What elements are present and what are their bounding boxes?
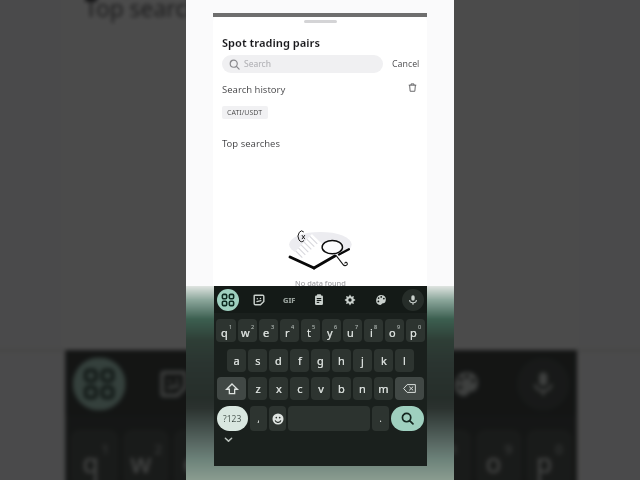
- button[interactable]: q: [216, 319, 236, 342]
- staticText: No data found: [260, 331, 382, 350]
- button[interactable]: v: [311, 377, 330, 400]
- staticText: d: [275, 353, 282, 368]
- button[interactable]: ?123: [217, 406, 248, 431]
- button[interactable]: GIF: [222, 360, 270, 408]
- button[interactable]: Voice input: [517, 358, 570, 410]
- button[interactable]: r: [280, 319, 299, 342]
- staticText: b: [338, 381, 345, 396]
- staticText: r: [236, 444, 248, 480]
- button[interactable]: x: [269, 377, 288, 400]
- button[interactable]: Emoji: [269, 406, 286, 431]
- staticText: n: [359, 381, 366, 396]
- button[interactable]: i: [364, 319, 383, 342]
- button[interactable]: n: [353, 377, 372, 400]
- staticText: 1: [229, 323, 233, 330]
- button[interactable]: g: [311, 349, 330, 372]
- button[interactable]: Cancel: [388, 55, 424, 73]
- staticText: 0: [418, 323, 422, 330]
- staticText: a: [233, 353, 240, 368]
- button[interactable]: w: [123, 430, 169, 480]
- staticText: CATI/USDT: [227, 108, 263, 118]
- button[interactable]: ,: [250, 406, 267, 431]
- button[interactable]: Keyboard toolbar: [217, 289, 239, 311]
- button[interactable]: j: [353, 349, 372, 372]
- button[interactable]: u: [343, 319, 362, 342]
- button[interactable]: Keyboard toolbar: [73, 358, 126, 410]
- button[interactable]: o: [385, 319, 404, 342]
- staticText: No data found: [295, 278, 346, 286]
- button[interactable]: o: [476, 430, 522, 480]
- staticText: GIF: [231, 372, 262, 396]
- button[interactable]: z: [248, 377, 267, 400]
- button[interactable]: GIF: [279, 290, 299, 310]
- staticText: l: [403, 353, 406, 368]
- staticText: .: [379, 413, 382, 424]
- staticText: q: [82, 444, 99, 480]
- button[interactable]: l: [395, 349, 414, 372]
- staticText: 5: [312, 323, 316, 330]
- button[interactable]: p: [406, 319, 425, 342]
- button[interactable]: Stickers: [249, 290, 269, 310]
- button[interactable]: u: [375, 430, 421, 480]
- button[interactable]: q: [70, 430, 118, 480]
- button[interactable]: Clipboard: [294, 360, 342, 408]
- staticText: 0: [555, 439, 565, 456]
- staticText: GIF: [283, 295, 296, 305]
- button[interactable]: Clipboard: [309, 290, 329, 310]
- staticText: Spot trading pairs: [222, 35, 321, 50]
- button[interactable]: s: [248, 349, 267, 372]
- staticText: m: [378, 381, 389, 396]
- button[interactable]: w: [238, 319, 257, 342]
- button[interactable]: i: [426, 430, 471, 480]
- button[interactable]: Themes: [371, 290, 391, 310]
- button[interactable]: Backspace: [395, 377, 424, 400]
- button[interactable]: r: [224, 430, 270, 480]
- button[interactable]: Themes: [442, 360, 490, 408]
- staticText: x: [276, 381, 282, 396]
- staticText: Top searches: [85, 0, 224, 24]
- button[interactable]: Settings: [340, 290, 360, 310]
- button[interactable]: Shift: [217, 377, 246, 400]
- button[interactable]: Search: [222, 55, 383, 73]
- button[interactable]: m: [374, 377, 393, 400]
- staticText: 2: [251, 323, 255, 330]
- staticText: Top searches: [222, 137, 280, 150]
- staticText: i: [440, 444, 447, 480]
- button[interactable]: Stickers: [150, 360, 198, 408]
- staticText: u: [347, 325, 354, 340]
- button[interactable]: a: [227, 349, 246, 372]
- button[interactable]: Settings: [368, 360, 416, 408]
- staticText: 7: [355, 323, 359, 330]
- staticText: 9: [505, 439, 514, 456]
- button[interactable]: e: [259, 319, 278, 342]
- staticText: o: [486, 444, 502, 480]
- button[interactable]: e: [174, 430, 219, 480]
- staticText: t: [289, 444, 298, 480]
- button[interactable]: h: [332, 349, 351, 372]
- button[interactable]: t: [274, 430, 320, 480]
- button[interactable]: t: [301, 319, 320, 342]
- button[interactable]: Search: [391, 406, 424, 431]
- button[interactable]: y: [322, 319, 341, 342]
- button[interactable]: f: [290, 349, 309, 372]
- button[interactable]: b: [332, 377, 351, 400]
- staticText: f: [298, 353, 302, 368]
- button[interactable]: .: [372, 406, 389, 431]
- button[interactable]: Hide keyboard: [220, 431, 236, 447]
- button[interactable]: p: [526, 430, 572, 480]
- staticText: o: [389, 325, 396, 340]
- button[interactable]: Voice input: [402, 289, 424, 311]
- button[interactable]: Clear search history: [405, 80, 419, 94]
- staticText: q: [221, 325, 228, 340]
- button[interactable]: d: [269, 349, 288, 372]
- staticText: p: [536, 444, 553, 480]
- button[interactable]: c: [290, 377, 309, 400]
- staticText: i: [370, 325, 373, 340]
- button[interactable]: CATI/USDT: [222, 106, 268, 119]
- button[interactable]: k: [374, 349, 393, 372]
- staticText: c: [297, 381, 303, 396]
- button[interactable]: y: [325, 430, 370, 480]
